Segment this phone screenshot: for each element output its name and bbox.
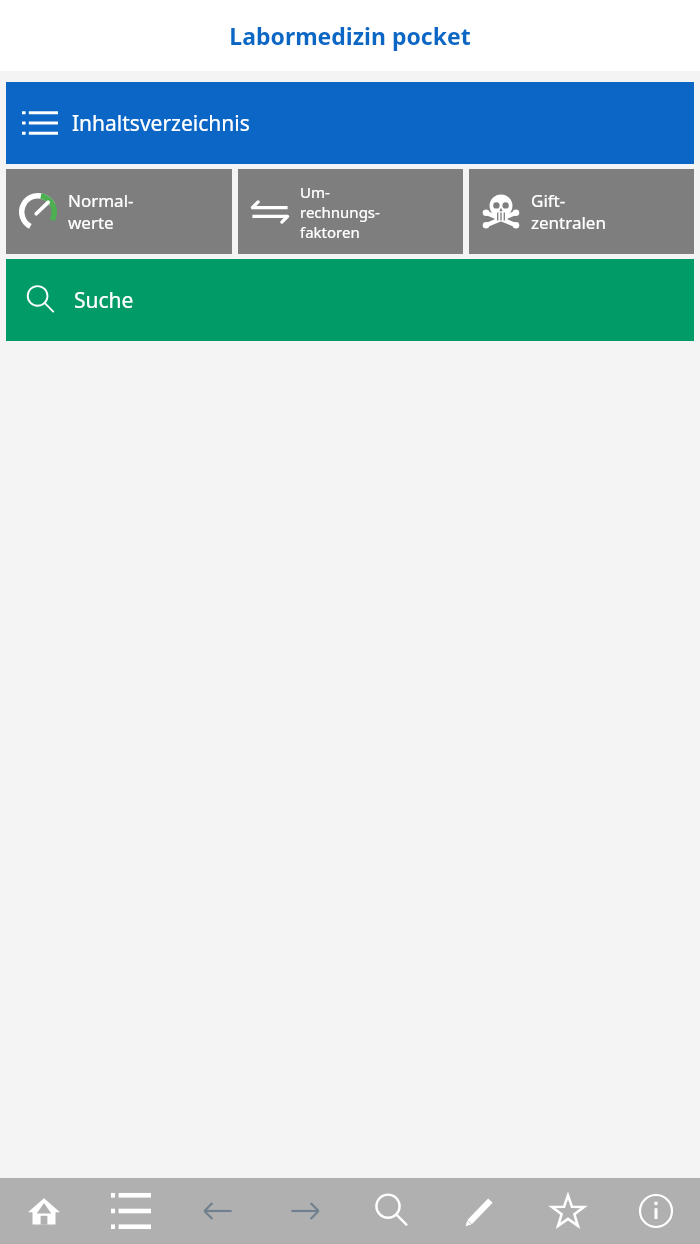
staticText: Gift- zentralen [531,189,606,234]
button[interactable]: Info [612,1178,700,1244]
button[interactable]: Edit [436,1178,524,1244]
button[interactable]: Home [0,1178,87,1244]
button[interactable]: Giftzentralen [469,169,694,254]
button[interactable]: Back [174,1178,261,1244]
button[interactable]: List [87,1178,174,1244]
button[interactable]: Umrechnungsfaktoren [238,169,463,254]
button[interactable]: Search [348,1178,436,1244]
button[interactable]: Inhaltsverzeichnis [6,82,694,164]
staticText: Labormedizin pocket [229,20,471,51]
staticText: Normal- werte [68,189,134,234]
staticText: Suche [74,286,134,315]
button[interactable]: Forward [261,1178,348,1244]
button[interactable]: Suche [6,259,694,341]
staticText: Um- rechnungs- faktoren [300,182,380,242]
staticText: Inhaltsverzeichnis [72,109,250,138]
button[interactable]: Normalwerte [6,169,232,254]
button[interactable]: Favorites [524,1178,612,1244]
